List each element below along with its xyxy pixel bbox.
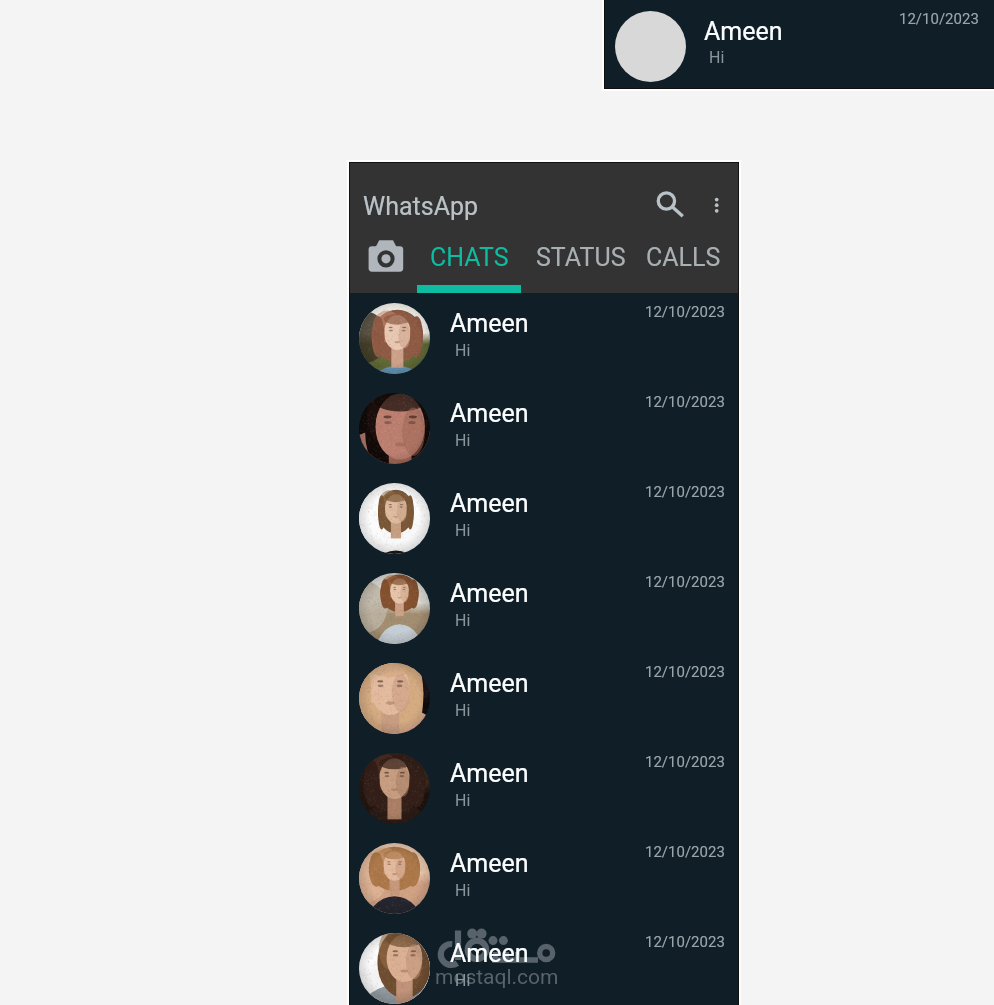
staticText: CALLS <box>646 243 721 272</box>
button[interactable]: Ameen <box>348 923 739 1005</box>
staticText: Ameen <box>450 669 529 698</box>
button[interactable]: Ameen <box>348 383 739 473</box>
staticText: 12/10/2023 <box>645 483 725 501</box>
button[interactable]: Ameen <box>348 743 739 833</box>
staticText: 12/10/2023 <box>645 933 725 951</box>
staticText: 12/10/2023 <box>645 753 725 771</box>
staticText: 12/10/2023 <box>899 10 979 28</box>
staticText: 12/10/2023 <box>645 393 725 411</box>
button[interactable]: CALLS <box>643 231 723 284</box>
staticText: Hi <box>455 791 471 810</box>
staticText: mostaql.com <box>435 965 559 990</box>
staticText: STATUS <box>536 243 626 272</box>
staticText: Hi <box>455 341 471 360</box>
staticText: Ameen <box>450 489 529 518</box>
staticText: Ameen <box>704 17 783 46</box>
staticText: Ameen <box>450 309 529 338</box>
button[interactable]: STATUS <box>526 231 636 284</box>
staticText: 12/10/2023 <box>645 303 725 321</box>
button[interactable]: Ameen <box>348 473 739 563</box>
button[interactable]: Camera <box>356 233 414 283</box>
button[interactable]: Ameen <box>348 563 739 653</box>
staticText: Hi <box>709 48 725 67</box>
button[interactable]: More options <box>698 177 736 215</box>
button[interactable]: Ameen <box>348 833 739 923</box>
staticText: Hi <box>455 611 471 630</box>
button[interactable]: Ameen <box>348 653 739 743</box>
staticText: Ameen <box>450 399 529 428</box>
staticText: 12/10/2023 <box>645 843 725 861</box>
staticText: Ameen <box>450 579 529 608</box>
staticText: Hi <box>455 521 471 540</box>
staticText: Ameen <box>450 939 529 968</box>
staticText: Ameen <box>450 759 529 788</box>
button[interactable]: Search <box>642 177 691 226</box>
button[interactable]: Ameen <box>348 293 739 383</box>
button[interactable]: CHATS <box>417 231 521 284</box>
staticText: WhatsApp <box>363 192 479 221</box>
staticText: Ameen <box>450 849 529 878</box>
button[interactable]: Ameen <box>603 0 994 89</box>
staticText: Hi <box>455 431 471 450</box>
staticText: Hi <box>455 971 471 990</box>
staticText: 12/10/2023 <box>645 573 725 591</box>
staticText: CHATS <box>430 243 509 272</box>
staticText: 12/10/2023 <box>645 663 725 681</box>
staticText: Hi <box>455 881 471 900</box>
staticText: Hi <box>455 701 471 720</box>
